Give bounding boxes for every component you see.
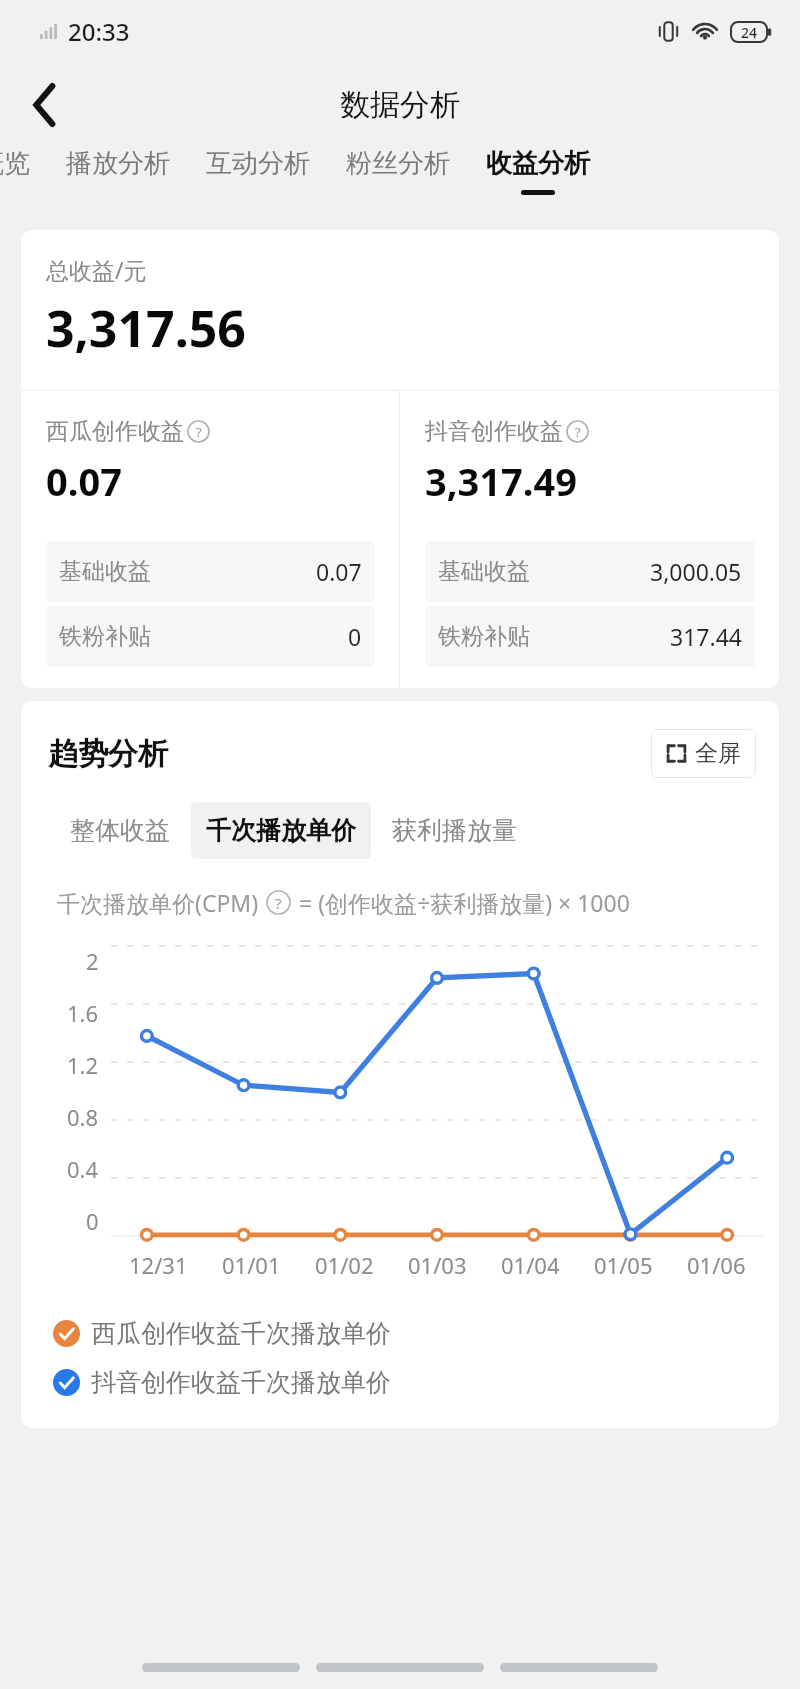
staticText: 获利播放量 [392,815,517,846]
staticText: 01/06 [687,1250,746,1280]
button[interactable]: More info [187,420,210,443]
button[interactable]: 收益分析 [482,147,594,195]
staticText: 0.4 [67,1154,99,1184]
staticText: 基础收益 [438,557,530,586]
staticText: 播放分析 [66,147,170,180]
staticText: 0.07 [316,556,362,587]
button[interactable]: Back [16,76,74,134]
staticText: 12/31 [129,1250,188,1280]
button[interactable]: 获利播放量 [377,802,532,859]
button[interactable]: 铁粉补贴 [46,606,375,667]
staticText: 千次播放单价(CPM) [57,887,259,918]
staticText: 抖音创作收益 [425,417,563,446]
button[interactable]: 整体收益 [55,802,185,859]
staticText: 基础收益 [59,557,151,586]
staticText: 01/04 [501,1250,560,1280]
staticText: 20:33 [68,15,130,48]
button[interactable]: 抖音创作收益千次播放单价 [21,1367,779,1398]
button[interactable]: 西瓜创作收益千次播放单价 [21,1318,779,1349]
button[interactable]: 概览 [0,147,34,195]
staticText: = (创作收益÷获利播放量) × 1000 [299,887,630,918]
staticText: 收益分析 [486,147,590,180]
staticText: 数据分析 [340,86,460,124]
staticText: ? [575,423,581,441]
staticText: 3,000.05 [650,556,742,587]
staticText: 千次播放单价 [206,815,356,846]
staticText: 01/03 [408,1250,467,1280]
staticText: 0.8 [67,1102,99,1132]
staticText: 01/05 [594,1250,653,1280]
button[interactable]: 千次播放单价 [191,802,371,859]
button[interactable]: More info [566,420,589,443]
staticText: 全屏 [695,739,741,768]
staticText: 01/02 [315,1250,374,1280]
staticText: 0 [348,621,362,652]
staticText: 抖音创作收益千次播放单价 [91,1367,391,1398]
staticText: 整体收益 [70,815,170,846]
staticText: 3,317.56 [46,294,246,362]
button[interactable]: 粉丝分析 [342,147,454,195]
staticText: 西瓜创作收益 [46,417,184,446]
staticText: 2 [86,946,99,976]
button[interactable]: 全屏 [651,729,756,778]
staticText: 0.07 [46,455,122,507]
staticText: 互动分析 [206,147,310,180]
staticText: ? [196,423,202,441]
staticText: ? [275,893,282,913]
button[interactable]: 基础收益 [425,541,755,602]
staticText: 总收益/元 [46,254,147,285]
button[interactable]: 互动分析 [202,147,314,195]
staticText: 24 [741,23,758,42]
button[interactable]: 播放分析 [62,147,174,195]
staticText: 概览 [0,147,30,180]
button[interactable]: 基础收益 [46,541,375,602]
staticText: 1.2 [67,1050,99,1080]
button[interactable]: 铁粉补贴 [425,606,755,667]
staticText: 趋势分析 [48,735,168,773]
staticText: 粉丝分析 [346,147,450,180]
staticText: 西瓜创作收益千次播放单价 [91,1318,391,1349]
staticText: 01/01 [222,1250,281,1280]
staticText: 317.44 [670,621,742,652]
staticText: 铁粉补贴 [59,622,151,651]
staticText: 铁粉补贴 [438,622,530,651]
button[interactable]: More info [266,890,291,915]
staticText: 1.6 [67,998,99,1028]
staticText: 3,317.49 [425,455,577,507]
staticText: 0 [86,1206,99,1236]
